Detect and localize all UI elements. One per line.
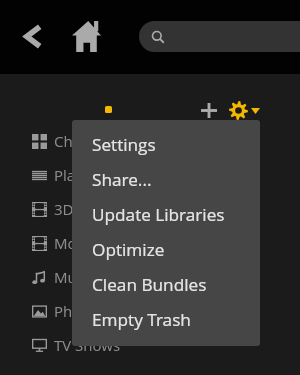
staticText: Music	[54, 267, 95, 287]
staticText: 3D Movies	[54, 199, 127, 219]
button[interactable]: Movies	[0, 226, 300, 260]
button[interactable]: TV Shows	[0, 328, 300, 362]
staticText: Optimize	[92, 238, 165, 261]
staticText: Share...	[92, 168, 152, 191]
button[interactable]: Settings	[226, 98, 250, 122]
staticText: Photos	[54, 301, 103, 321]
staticText: Channels	[54, 131, 119, 151]
staticText: Update Libraries	[92, 203, 225, 226]
button[interactable]: Playlists	[0, 158, 300, 192]
staticText: Movies	[54, 233, 104, 253]
staticText: TV Shows	[54, 335, 121, 355]
button[interactable]: Music	[0, 260, 300, 294]
button[interactable]	[139, 21, 300, 52]
button[interactable]: Back	[13, 17, 51, 55]
button[interactable]: Optimize	[72, 232, 260, 267]
button[interactable]: Update Libraries	[72, 197, 260, 232]
button[interactable]: Home	[68, 18, 104, 54]
button[interactable]: Add	[197, 98, 221, 122]
staticText: Empty Trash	[92, 308, 191, 331]
staticText: Clean Bundles	[92, 273, 207, 296]
button[interactable]: Photos	[0, 294, 300, 328]
button[interactable]: More options	[248, 103, 263, 118]
button[interactable]: Channels	[0, 124, 300, 158]
button[interactable]: Settings	[72, 127, 260, 162]
button[interactable]: 3D Movies	[0, 192, 300, 226]
button[interactable]: Clean Bundles	[72, 267, 260, 302]
staticText: Playlists	[54, 165, 110, 185]
button[interactable]: Empty Trash	[72, 302, 260, 337]
button[interactable]: Share...	[72, 162, 260, 197]
staticText: Settings	[92, 133, 156, 156]
